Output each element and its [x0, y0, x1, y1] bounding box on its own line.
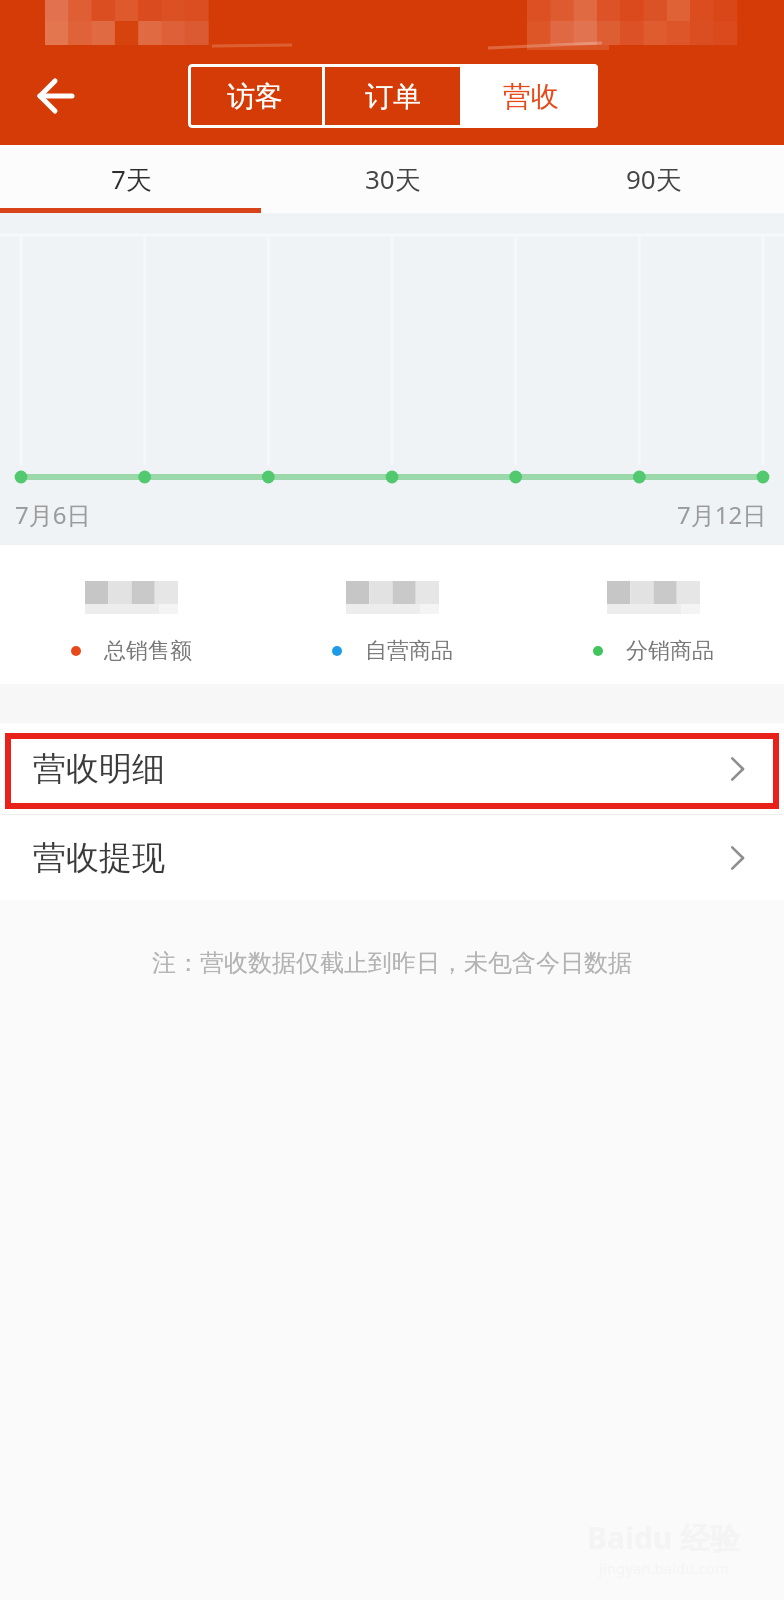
button[interactable]: Back	[23, 63, 89, 129]
button[interactable]: 营收明细	[0, 723, 784, 814]
button[interactable]: 营收提现	[0, 815, 784, 900]
button[interactable]: 分销商品	[523, 545, 784, 684]
staticText: 营收提现	[33, 837, 165, 879]
staticText: 7月6日	[15, 498, 91, 531]
staticText: 营收明细	[33, 748, 165, 790]
button[interactable]: 访客	[188, 64, 322, 128]
staticText: 营收	[503, 79, 559, 114]
staticText: 总销售额	[104, 637, 192, 665]
staticText: 订单	[365, 79, 421, 114]
button[interactable]: 90天	[523, 145, 784, 213]
button[interactable]: 7天	[0, 145, 262, 213]
button[interactable]: 总销售额	[0, 545, 262, 684]
staticText: 分销商品	[626, 637, 714, 665]
staticText: 90天	[626, 161, 682, 197]
staticText: 自营商品	[365, 637, 453, 665]
button[interactable]: 自营商品	[262, 545, 523, 684]
staticText: 7天	[111, 161, 152, 197]
staticText: 访客	[227, 79, 283, 114]
button[interactable]: 营收	[463, 64, 598, 128]
button[interactable]: 30天	[262, 145, 523, 213]
staticText: 注：营收数据仅截止到昨日，未包含今日数据	[152, 948, 632, 978]
button[interactable]: 订单	[325, 64, 460, 128]
staticText: 30天	[365, 161, 421, 197]
staticText: 7月12日	[677, 498, 767, 531]
